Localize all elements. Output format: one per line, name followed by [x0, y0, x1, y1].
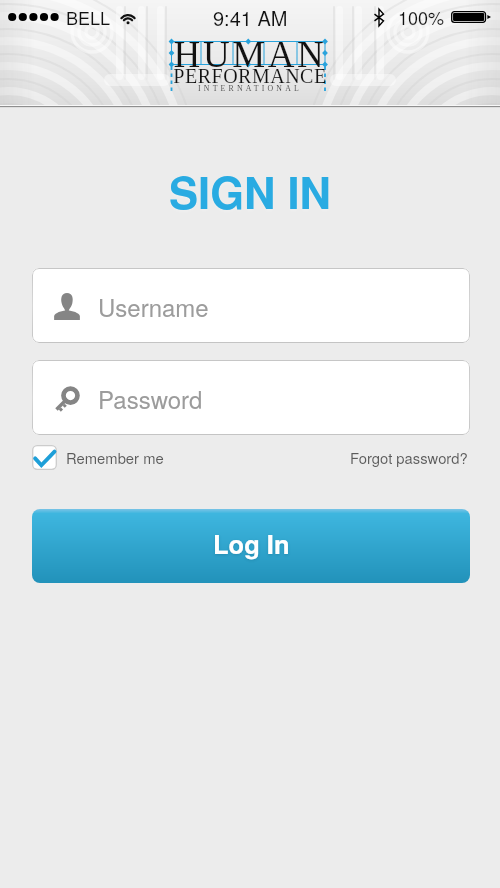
button[interactable]: Log In — [32, 509, 470, 583]
button[interactable]: Username — [32, 268, 470, 343]
staticText: PERFORMANCE — [0, 65, 500, 87]
staticText: INTERNATIONAL — [0, 84, 500, 93]
staticText: Log In — [213, 525, 290, 562]
staticText: SIGN IN — [0, 160, 500, 222]
staticText: 100% — [398, 4, 445, 30]
staticText: BELL — [66, 4, 111, 30]
button[interactable]: Password — [32, 360, 470, 435]
button[interactable]: Forgot password? — [350, 447, 468, 468]
staticText: Username — [98, 289, 209, 323]
staticText: HUMAN — [0, 34, 500, 75]
staticText: Forgot password? — [350, 447, 468, 468]
button[interactable]: Remember me — [32, 445, 164, 470]
staticText: Remember me — [66, 447, 164, 468]
staticText: Password — [98, 381, 203, 415]
staticText: 9:41 AM — [213, 3, 288, 32]
